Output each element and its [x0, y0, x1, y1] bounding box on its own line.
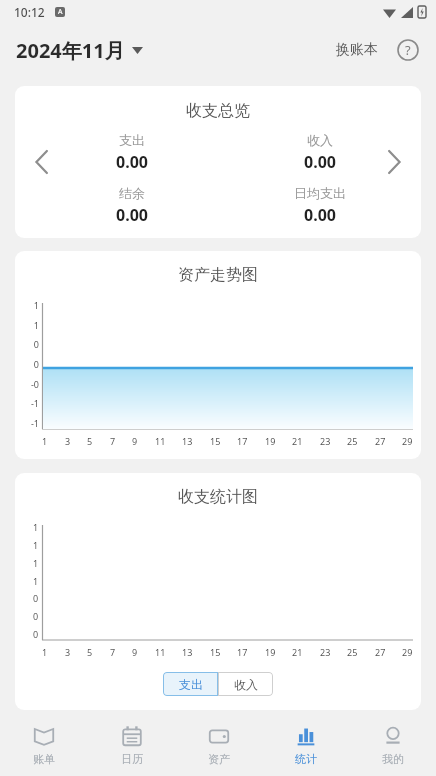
staticText: 换账本 — [336, 41, 378, 59]
staticText: 我的 — [382, 752, 404, 766]
button[interactable]: 账单 — [0, 714, 88, 776]
staticText: 收支统计图 — [178, 487, 258, 507]
staticText: 7 — [110, 646, 116, 658]
staticText: 5 — [87, 435, 93, 447]
staticText: 1 — [33, 575, 39, 587]
staticText: 资产走势图 — [178, 265, 258, 285]
staticText: 日均支出 — [294, 185, 346, 201]
staticText: 2024年11月 — [16, 37, 125, 64]
staticText: 25 — [347, 435, 358, 447]
staticText: ? — [405, 41, 411, 59]
staticText: 27 — [375, 646, 386, 658]
staticText: 27 — [375, 435, 386, 447]
staticText: 23 — [320, 435, 331, 447]
button[interactable]: 换账本 — [330, 35, 384, 65]
staticText: 0 — [33, 358, 39, 370]
staticText: 9 — [132, 435, 138, 447]
staticText: -1 — [30, 397, 39, 409]
staticText: 0.00 — [304, 204, 336, 226]
button[interactable]: 统计 — [262, 714, 349, 776]
button[interactable]: 支出 — [163, 672, 218, 696]
staticText: 10:12 — [14, 4, 45, 20]
staticText: 0 — [33, 592, 39, 604]
staticText: 支出 — [179, 677, 203, 692]
staticText: 15 — [210, 646, 221, 658]
staticText: 7 — [110, 435, 116, 447]
staticText: 收入 — [234, 677, 258, 692]
button[interactable]: 我的 — [349, 714, 436, 776]
staticText: 1 — [42, 646, 48, 658]
staticText: 21 — [292, 646, 303, 658]
button[interactable]: 收入 — [218, 672, 273, 696]
staticText: 1 — [42, 435, 48, 447]
staticText: 日历 — [121, 752, 143, 766]
button[interactable]: Help — [394, 36, 422, 64]
staticText: 0 — [33, 628, 39, 640]
staticText: 资产 — [208, 752, 230, 766]
staticText: 21 — [292, 435, 303, 447]
staticText: 1 — [33, 319, 39, 331]
staticText: 11 — [155, 646, 166, 658]
staticText: 1 — [33, 539, 39, 551]
staticText: 13 — [182, 646, 193, 658]
staticText: 收入 — [307, 132, 333, 148]
staticText: 3 — [65, 646, 71, 658]
staticText: 29 — [402, 646, 413, 658]
staticText: 3 — [65, 435, 71, 447]
staticText: 19 — [265, 435, 276, 447]
staticText: 结余 — [119, 185, 145, 201]
staticText: 1 — [33, 521, 39, 533]
button[interactable]: Previous — [23, 143, 61, 181]
staticText: 13 — [182, 435, 193, 447]
staticText: 1 — [33, 557, 39, 569]
staticText: -0 — [30, 378, 39, 390]
button[interactable]: 资产 — [175, 714, 262, 776]
staticText: 5 — [87, 646, 93, 658]
staticText: 25 — [347, 646, 358, 658]
staticText: A — [58, 7, 63, 17]
staticText: 9 — [132, 646, 138, 658]
staticText: 统计 — [295, 752, 317, 766]
staticText: 支出 — [119, 132, 145, 148]
staticText: 17 — [237, 435, 248, 447]
staticText: 0.00 — [116, 151, 148, 173]
button[interactable]: 日历 — [88, 714, 175, 776]
staticText: 1 — [33, 299, 39, 311]
staticText: 17 — [237, 646, 248, 658]
staticText: 19 — [265, 646, 276, 658]
staticText: 0 — [33, 610, 39, 622]
staticText: 15 — [210, 435, 221, 447]
staticText: 0.00 — [304, 151, 336, 173]
staticText: -1 — [30, 417, 39, 429]
button[interactable]: Next — [375, 143, 413, 181]
staticText: 23 — [320, 646, 331, 658]
staticText: 账单 — [33, 752, 55, 766]
staticText: 29 — [402, 435, 413, 447]
staticText: 0.00 — [116, 204, 148, 226]
staticText: 0 — [33, 338, 39, 350]
staticText: 收支总览 — [186, 101, 250, 121]
button[interactable]: 2024年11月 — [14, 33, 145, 68]
staticText: 11 — [155, 435, 166, 447]
